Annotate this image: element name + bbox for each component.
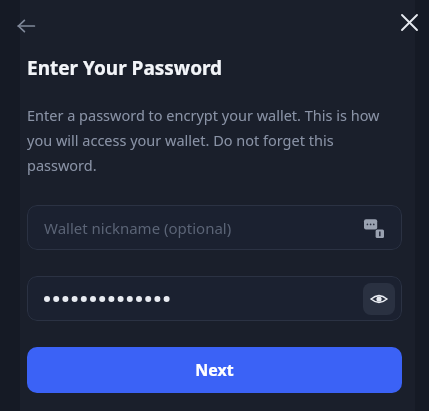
staticText: Enter Your Password bbox=[27, 55, 223, 81]
button[interactable]: Wallet nickname (optional) bbox=[27, 205, 402, 250]
button[interactable]: Close bbox=[391, 4, 427, 40]
staticText: Enter a password to encrypt your wallet.… bbox=[27, 105, 399, 175]
button[interactable]: Autofill password bbox=[363, 217, 385, 239]
staticText: Next bbox=[195, 359, 234, 381]
button[interactable]: Next bbox=[27, 347, 402, 393]
staticText: Wallet nickname (optional) bbox=[44, 218, 363, 238]
button[interactable]: Back bbox=[8, 8, 44, 44]
button[interactable]: Show password bbox=[363, 283, 395, 315]
button[interactable]: Show password bbox=[27, 276, 402, 321]
